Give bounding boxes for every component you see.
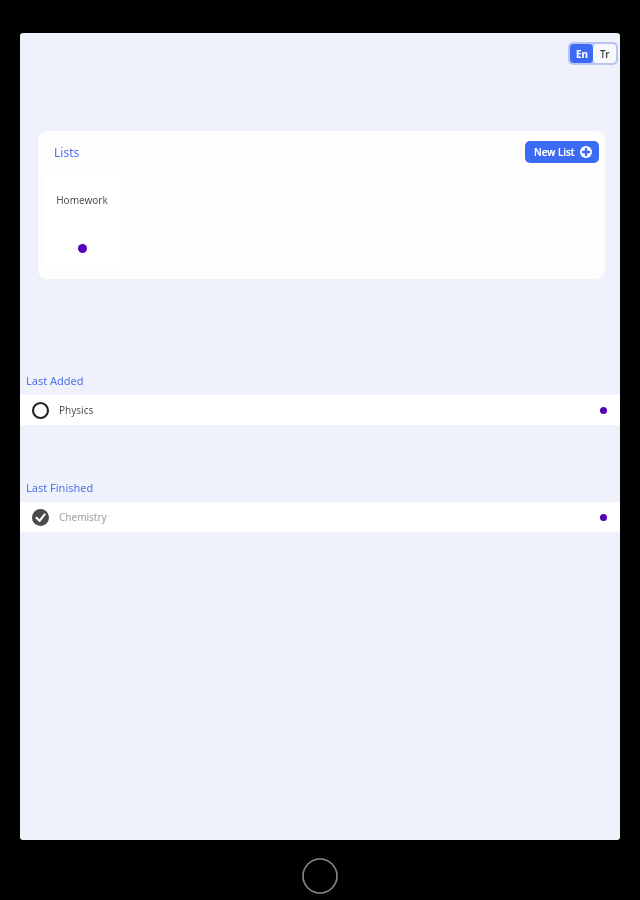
staticText: Last Added — [26, 373, 84, 388]
button[interactable]: Chemistry — [20, 502, 620, 532]
button[interactable]: En — [570, 44, 593, 63]
staticText: Tr — [600, 47, 610, 61]
staticText: Physics — [59, 403, 94, 417]
staticText: Lists — [54, 144, 80, 160]
staticText: Last Finished — [26, 480, 94, 495]
staticText: Chemistry — [59, 510, 107, 524]
button[interactable]: Home — [302, 858, 338, 894]
button[interactable]: Physics — [20, 395, 620, 425]
staticText: Homework — [56, 193, 108, 207]
staticText: New List — [534, 145, 575, 159]
button[interactable]: Tr — [593, 44, 616, 63]
button[interactable]: New List — [525, 141, 599, 163]
button[interactable]: Homework — [43, 173, 121, 271]
staticText: En — [576, 47, 588, 61]
